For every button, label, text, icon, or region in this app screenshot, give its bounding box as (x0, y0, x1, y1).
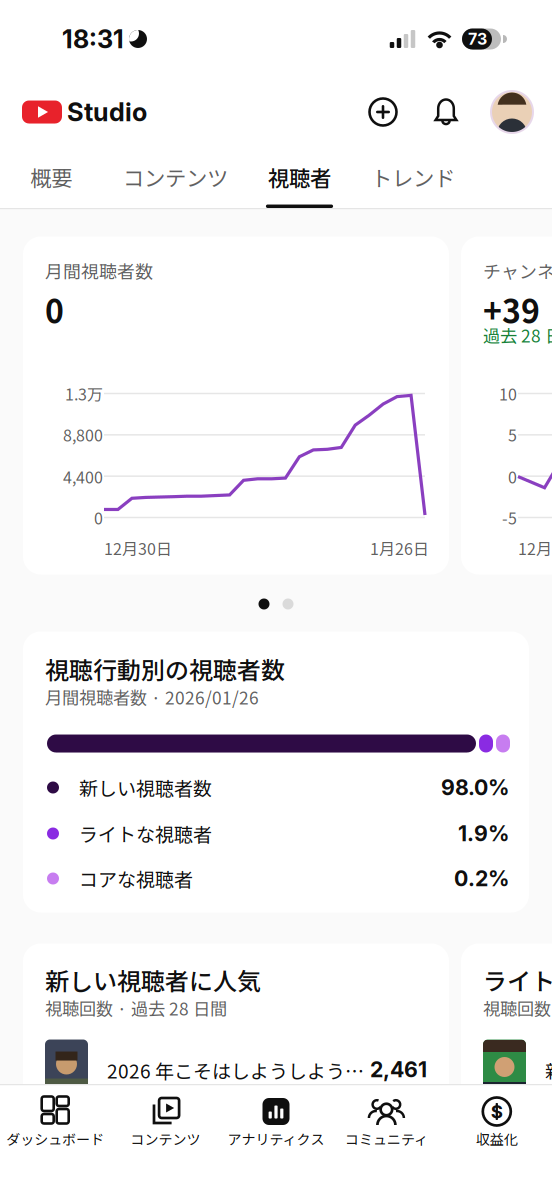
button[interactable]: Notifications (424, 88, 468, 136)
staticText: 73 (468, 29, 487, 49)
staticText: 98.0% (441, 775, 509, 800)
staticText: 12月30日 (104, 536, 172, 560)
button[interactable]: コンテンツ (104, 146, 247, 208)
staticText: +39 (483, 286, 540, 333)
staticText: アナリティクス (227, 1128, 324, 1149)
staticText: 12月30日 (518, 536, 552, 560)
button[interactable]: トレンド (352, 146, 474, 208)
staticText: 月間視聴者数 (45, 257, 153, 283)
staticText: 収益化 (476, 1128, 518, 1149)
staticText: ライトな視聴者に人気 (483, 962, 552, 997)
staticText: 新しい動画のお知らせ… (545, 1056, 552, 1084)
staticText: コミュニティ (345, 1128, 428, 1149)
staticText: コンテンツ (131, 1128, 201, 1149)
staticText: 0 (94, 506, 103, 529)
staticText: 視聴回数 · 過去 28 日間 (45, 995, 227, 1021)
staticText: 2,461 (370, 1056, 427, 1082)
staticText: 視聴回数 · 過去 28 日間 (483, 995, 552, 1021)
staticText: トレンド (371, 162, 455, 192)
staticText: Studio (67, 97, 147, 127)
staticText: 18:31 (62, 24, 124, 54)
button[interactable]: コンテンツ (110, 1085, 221, 1200)
staticText: 視聴者 (268, 162, 331, 192)
button[interactable]: 概要 (0, 146, 104, 208)
staticText: 新しい視聴者数 (79, 774, 212, 801)
button[interactable]: ダッシュボード (0, 1085, 110, 1200)
staticText: 4,400 (63, 465, 103, 488)
staticText: 0 (508, 465, 517, 488)
staticText: 視聴行動別の視聴者数 (45, 651, 285, 686)
button[interactable]: Create (361, 88, 405, 136)
staticText: 1月26日 (370, 536, 429, 560)
staticText: 1.3万 (65, 382, 103, 405)
staticText: 10 (499, 382, 517, 405)
staticText: 5 (508, 423, 517, 446)
staticText: 月間視聴者数 · 2026/01/26 (45, 684, 259, 710)
button[interactable]: 視聴者 (247, 146, 352, 208)
staticText: ダッシュボード (6, 1128, 104, 1149)
staticText: コアな視聴者 (79, 865, 193, 892)
staticText: 1.9% (458, 821, 509, 846)
staticText: ライトな視聴者 (79, 820, 212, 847)
button[interactable]: Account (490, 88, 534, 136)
staticText: 0.2% (454, 866, 509, 891)
staticText: 新しい視聴者に人気 (45, 962, 261, 997)
staticText: S (491, 1100, 503, 1123)
staticText: -5 (502, 506, 517, 529)
staticText: 概要 (30, 162, 72, 192)
staticText: 過去 28 日間 (483, 322, 552, 348)
staticText: 0 (45, 286, 64, 333)
button[interactable]: S (442, 1085, 552, 1200)
button[interactable]: コミュニティ (331, 1085, 442, 1200)
staticText: チャンネル登録者数 (483, 257, 552, 283)
staticText: 2026 年こそはしようしよう… (107, 1056, 364, 1084)
staticText: 8,800 (63, 423, 103, 446)
staticText: コンテンツ (123, 162, 228, 192)
button[interactable]: アナリティクス (221, 1085, 331, 1200)
